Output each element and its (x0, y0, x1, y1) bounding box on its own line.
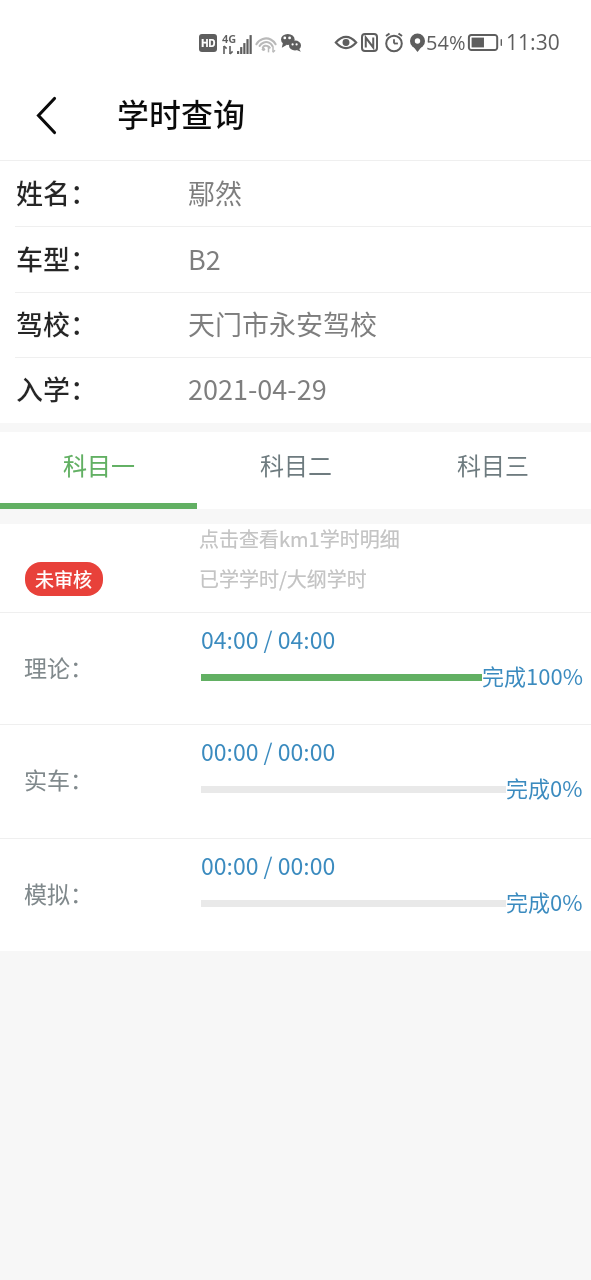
staticText: 完成0% (506, 885, 583, 917)
staticText: HD (201, 36, 215, 50)
staticText: 学时查询 (117, 90, 246, 136)
staticText: 4G (222, 31, 237, 46)
staticText: 车型： (16, 239, 97, 278)
staticText: 54% (426, 29, 466, 56)
button[interactable]: 科目二 (197, 432, 394, 503)
button[interactable]: 科目三 (394, 432, 591, 503)
button[interactable]: 模拟： (0, 839, 591, 951)
button[interactable]: 科目一 (0, 432, 197, 503)
staticText: 姓名： (16, 173, 97, 212)
button[interactable]: 车型： (0, 227, 591, 293)
staticText: 完成100% (482, 659, 583, 691)
staticText: 未审核 (35, 565, 93, 593)
staticText: 鄢然 (188, 173, 242, 212)
staticText: 2021-04-29 (188, 369, 327, 408)
staticText: 入学： (16, 369, 97, 408)
staticText: 点击查看km1学时明细 (199, 524, 400, 553)
button[interactable]: 点击查看km1学时明细 (0, 524, 591, 613)
staticText: B2 (188, 239, 221, 278)
staticText: 已学学时/大纲学时 (199, 564, 367, 593)
staticText: 理论： (24, 650, 93, 683)
staticText: 科目二 (260, 447, 332, 482)
staticText: 实车： (24, 762, 93, 795)
staticText: 天门市永安驾校 (188, 304, 377, 343)
staticText: 00:00 / 00:00 (201, 734, 336, 767)
staticText: 模拟： (24, 876, 93, 909)
staticText: 00:00 / 00:00 (201, 848, 336, 881)
staticText: 科目三 (457, 447, 529, 482)
staticText: 11:30 (506, 28, 560, 57)
button[interactable]: 理论： (0, 613, 591, 725)
staticText: 04:00 / 04:00 (201, 622, 336, 655)
staticText: 科目一 (63, 447, 135, 482)
button[interactable]: 驾校： (0, 293, 591, 358)
button[interactable]: Back (16, 86, 76, 146)
button[interactable]: 姓名： (0, 161, 591, 227)
staticText: 驾校： (16, 304, 97, 343)
staticText: 完成0% (506, 771, 583, 803)
button[interactable]: 入学： (0, 358, 591, 423)
button[interactable]: 实车： (0, 725, 591, 839)
